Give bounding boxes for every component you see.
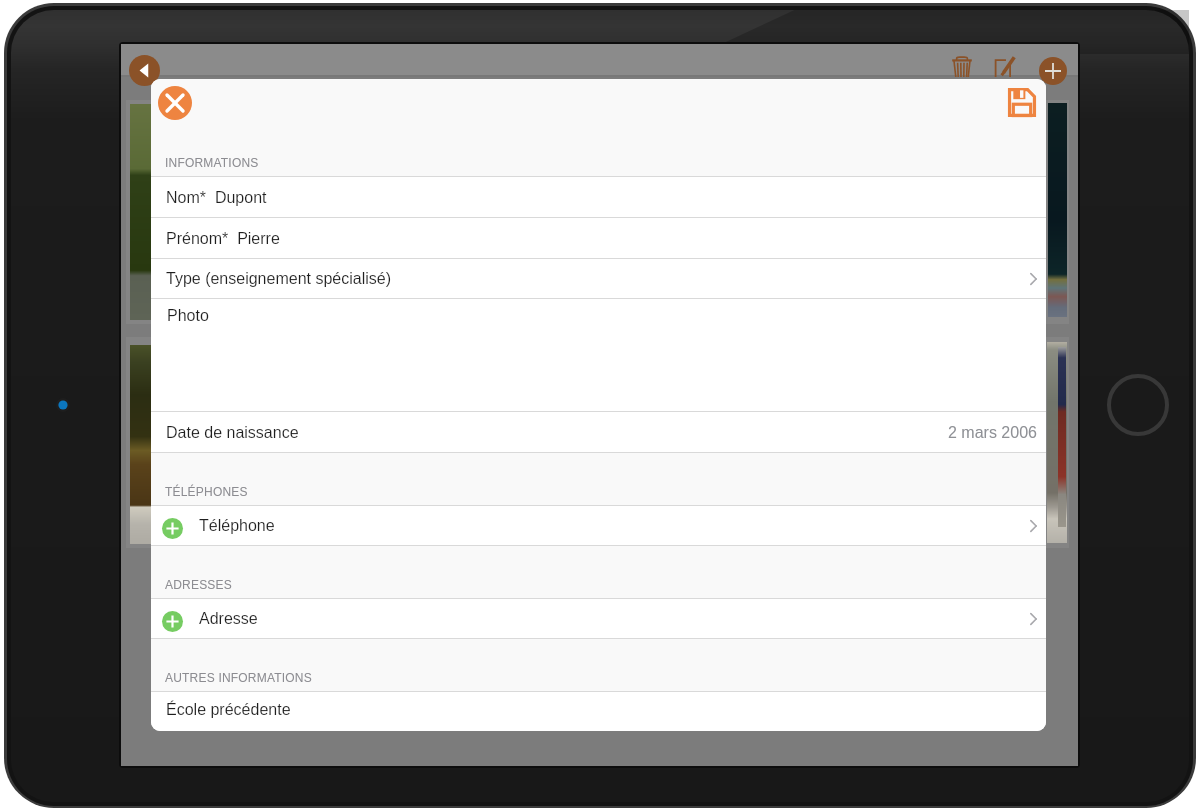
staticText: Prénom* Pierre [166,230,280,248]
button[interactable]: Nom* Dupont [151,177,1046,218]
staticText: Type (enseignement spécialisé) [166,270,392,288]
button[interactable]: Save [1008,88,1036,117]
button[interactable]: Edit [994,55,1017,77]
staticText: Téléphone [199,517,275,535]
button[interactable]: Photo [151,299,1046,412]
button[interactable]: Adresse [151,599,1046,639]
staticText: École précédente [166,701,291,719]
button[interactable]: Prénom* Pierre [151,218,1046,259]
button[interactable]: École précédente [151,692,1046,731]
staticText: ADRESSES [165,578,232,591]
button[interactable]: Close [158,86,192,120]
staticText: Adresse [199,610,258,628]
staticText: TÉLÉPHONES [165,485,248,498]
button[interactable]: Delete [952,56,972,77]
staticText: Photo [167,307,209,325]
button[interactable]: Date de naissance [151,412,1046,453]
button[interactable]: Type (enseignement spécialisé) [151,259,1046,299]
staticText: 2 mars 2006 [948,424,1037,442]
button[interactable]: Back [129,55,160,86]
button[interactable]: Add [1039,57,1067,85]
staticText: Nom* Dupont [166,189,267,207]
staticText: AUTRES INFORMATIONS [165,671,312,684]
staticText: Date de naissance [166,424,299,442]
button[interactable]: Téléphone [151,506,1046,546]
staticText: INFORMATIONS [165,156,259,169]
